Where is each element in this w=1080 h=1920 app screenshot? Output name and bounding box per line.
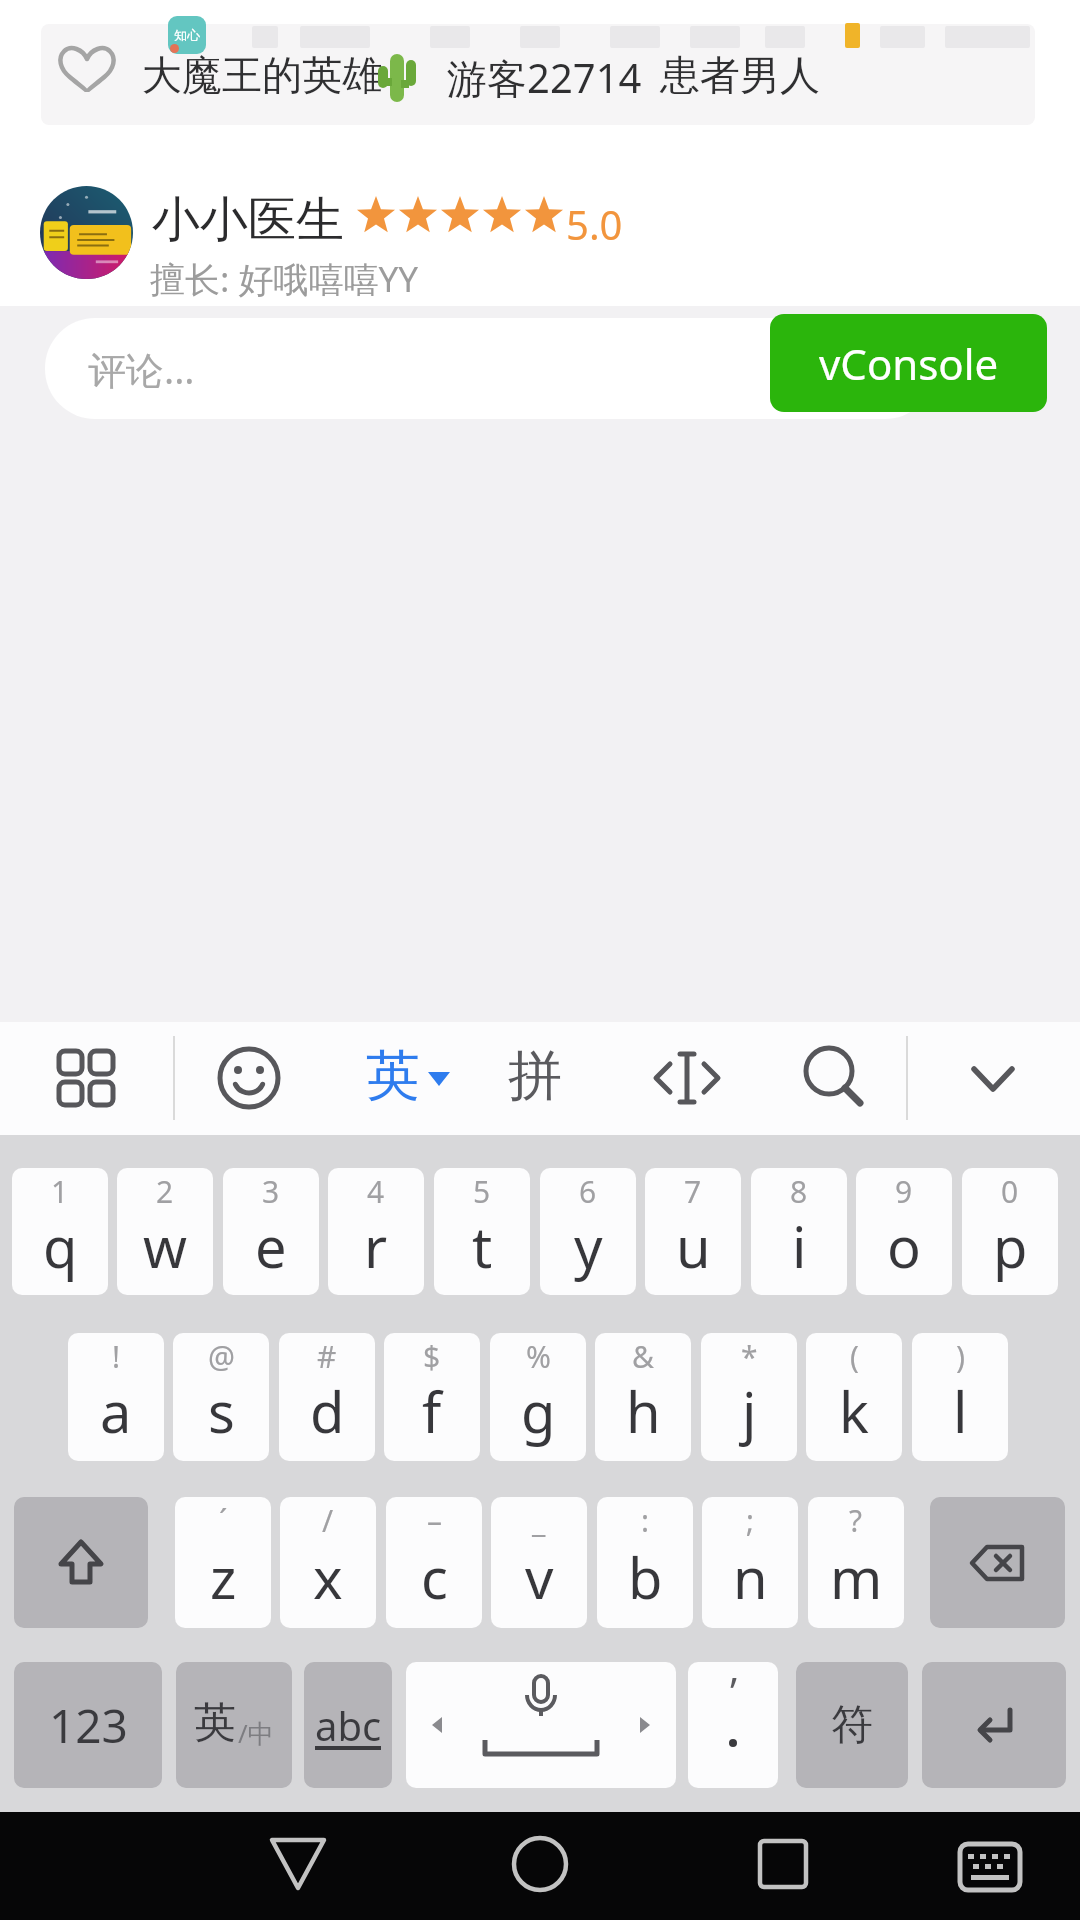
button[interactable] <box>930 1497 1065 1628</box>
button[interactable]: ( <box>806 1333 902 1461</box>
staticText: 游客22714 <box>447 50 642 105</box>
staticText: : <box>641 1500 650 1541</box>
staticText: * <box>741 1336 758 1377</box>
staticText: ? <box>849 1500 863 1541</box>
staticText: f <box>422 1373 442 1449</box>
staticText: 拼 <box>508 1042 562 1110</box>
staticText: @ <box>208 1336 235 1377</box>
button[interactable] <box>935 1812 1043 1920</box>
button[interactable]: / <box>280 1497 376 1628</box>
button[interactable]: 评论... <box>45 318 935 419</box>
staticText: 知心 <box>174 27 200 43</box>
staticText: 8 <box>790 1171 808 1212</box>
button[interactable]: : <box>597 1497 693 1628</box>
button[interactable]: 123 <box>14 1662 162 1788</box>
staticText: ) <box>956 1336 965 1377</box>
staticText: ! <box>112 1336 121 1377</box>
staticText: w <box>143 1208 188 1284</box>
staticText: 7 <box>684 1171 702 1212</box>
staticText: ( <box>850 1336 859 1377</box>
staticText: m <box>830 1539 883 1615</box>
button[interactable]: ? <box>808 1497 904 1628</box>
staticText: o <box>887 1208 921 1284</box>
staticText: p <box>993 1208 1028 1284</box>
button[interactable]: 6 <box>540 1168 636 1295</box>
button[interactable]: 1 <box>12 1168 108 1295</box>
staticText: s <box>208 1373 235 1449</box>
staticText: 擅长: 好哦嘻嘻YY <box>150 255 419 303</box>
button[interactable]: @ <box>173 1333 269 1461</box>
button[interactable]: ’ <box>688 1662 778 1788</box>
staticText: g <box>521 1373 556 1449</box>
button[interactable]: % <box>490 1333 586 1461</box>
button[interactable]: 4 <box>328 1168 424 1295</box>
button[interactable] <box>40 1032 134 1126</box>
button[interactable]: 英 <box>176 1662 292 1788</box>
staticText: /中 <box>238 1715 274 1751</box>
staticText: h <box>626 1373 661 1449</box>
staticText: x <box>313 1539 343 1615</box>
button[interactable]: 符 <box>796 1662 908 1788</box>
staticText: 2 <box>156 1171 174 1212</box>
staticText: 英 <box>194 1697 236 1750</box>
button[interactable] <box>14 1497 148 1628</box>
staticText: 符 <box>831 1699 873 1752</box>
button[interactable]: 拼 <box>480 1028 590 1128</box>
staticText: z <box>210 1539 237 1615</box>
staticText: ’ <box>730 1664 737 1718</box>
button[interactable]: vConsole <box>770 314 1047 412</box>
button[interactable] <box>202 1031 296 1125</box>
button[interactable]: 0 <box>962 1168 1058 1295</box>
button[interactable]: ) <box>912 1333 1008 1461</box>
staticText: ´ <box>219 1500 228 1541</box>
button[interactable]: ! <box>68 1333 164 1461</box>
button[interactable]: 2 <box>117 1168 213 1295</box>
button[interactable]: ; <box>702 1497 798 1628</box>
staticText: e <box>255 1208 287 1284</box>
button[interactable]: _ <box>491 1497 587 1628</box>
button[interactable] <box>40 186 133 279</box>
button[interactable]: ´ <box>175 1497 271 1628</box>
staticText: $ <box>423 1336 441 1377</box>
button[interactable] <box>946 1031 1040 1125</box>
button[interactable] <box>729 1812 837 1920</box>
button[interactable] <box>406 1662 676 1788</box>
button[interactable]: 9 <box>856 1168 952 1295</box>
button[interactable] <box>922 1662 1066 1788</box>
button[interactable] <box>786 1031 880 1125</box>
button[interactable] <box>640 1031 734 1125</box>
button[interactable] <box>244 1812 352 1920</box>
staticText: 123 <box>49 1694 128 1757</box>
staticText: 患者男人 <box>660 50 820 100</box>
staticText: 9 <box>895 1171 913 1212</box>
staticText: n <box>733 1539 768 1615</box>
button[interactable]: $ <box>384 1333 480 1461</box>
staticText: 6 <box>579 1171 597 1212</box>
button[interactable]: # <box>279 1333 375 1461</box>
staticText: ; <box>746 1500 755 1541</box>
button[interactable]: – <box>386 1497 482 1628</box>
button[interactable]: 英 <box>340 1028 460 1128</box>
button[interactable]: 7 <box>645 1168 741 1295</box>
staticText: q <box>43 1208 78 1284</box>
staticText: y <box>574 1208 603 1284</box>
button[interactable]: 5 <box>434 1168 530 1295</box>
staticText: u <box>676 1208 711 1284</box>
button[interactable]: & <box>595 1333 691 1461</box>
staticText: j <box>742 1373 757 1449</box>
staticText: t <box>472 1208 493 1284</box>
staticText: & <box>632 1336 654 1377</box>
staticText: 5 <box>473 1171 491 1212</box>
button[interactable] <box>41 24 1035 125</box>
staticText: 评论... <box>88 343 195 395</box>
staticText: # <box>317 1336 337 1377</box>
staticText: 5.0 <box>566 197 623 251</box>
button[interactable]: 3 <box>223 1168 319 1295</box>
staticText: vConsole <box>819 335 999 392</box>
button[interactable]: 8 <box>751 1168 847 1295</box>
button[interactable] <box>486 1812 594 1920</box>
staticText: – <box>427 1500 442 1541</box>
staticText: abc <box>315 1698 382 1752</box>
button[interactable]: abc <box>304 1662 392 1788</box>
button[interactable]: * <box>701 1333 797 1461</box>
